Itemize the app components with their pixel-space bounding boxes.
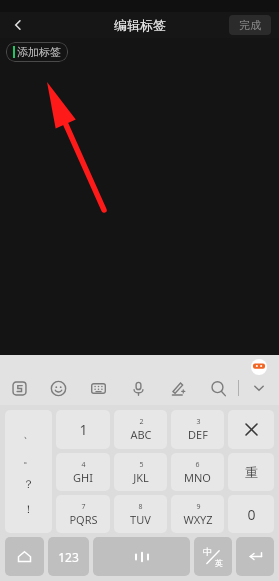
button[interactable]: 4 bbox=[56, 453, 110, 491]
button[interactable]: 、 bbox=[5, 410, 52, 533]
button[interactable]: Search bbox=[198, 371, 238, 405]
staticText: 6 bbox=[195, 460, 200, 470]
staticText: ！ bbox=[23, 502, 34, 516]
staticText: 添加标签 bbox=[17, 45, 61, 59]
button[interactable]: 重 bbox=[228, 453, 274, 491]
button[interactable]: Voice bbox=[118, 371, 158, 405]
button[interactable]: Enter bbox=[236, 537, 274, 576]
button[interactable]: 3 bbox=[171, 410, 224, 449]
staticText: GHI bbox=[73, 470, 93, 485]
staticText: DEF bbox=[188, 427, 208, 442]
button[interactable]: Space bbox=[93, 537, 190, 576]
button[interactable]: Delete bbox=[228, 410, 274, 449]
button[interactable]: Language bbox=[194, 537, 232, 576]
button[interactable]: 2 bbox=[114, 410, 167, 449]
staticText: WXYZ bbox=[183, 512, 213, 527]
staticText: MNO bbox=[184, 470, 211, 485]
staticText: 中 bbox=[203, 546, 212, 557]
button[interactable]: 完成 bbox=[229, 15, 271, 35]
button[interactable]: Sogou bbox=[0, 371, 39, 405]
staticText: 英 bbox=[215, 558, 223, 568]
staticText: 0 bbox=[247, 505, 256, 524]
staticText: 编辑标签 bbox=[114, 17, 166, 33]
staticText: 8 bbox=[138, 502, 143, 512]
button[interactable]: 添加标签 bbox=[6, 42, 68, 62]
button[interactable]: Emoji bbox=[39, 371, 78, 405]
button[interactable]: Keyboard bbox=[78, 371, 118, 405]
staticText: JKL bbox=[133, 470, 149, 485]
button[interactable]: 0 bbox=[228, 495, 274, 533]
button[interactable]: Home bbox=[5, 537, 44, 576]
staticText: 4 bbox=[81, 460, 86, 470]
staticText: 1 bbox=[79, 420, 88, 439]
staticText: 完成 bbox=[239, 18, 261, 32]
button[interactable]: Handwrite bbox=[158, 371, 198, 405]
staticText: PQRS bbox=[69, 512, 98, 527]
button[interactable]: 6 bbox=[171, 453, 224, 491]
button[interactable]: Collapse bbox=[239, 371, 279, 405]
staticText: TUV bbox=[130, 512, 151, 527]
button[interactable]: 5 bbox=[114, 453, 167, 491]
button[interactable]: 7 bbox=[56, 495, 110, 533]
staticText: 9 bbox=[196, 502, 201, 512]
staticText: 重 bbox=[245, 464, 258, 480]
staticText: ABC bbox=[130, 427, 152, 442]
staticText: 7 bbox=[81, 502, 86, 512]
button[interactable]: Back bbox=[0, 12, 36, 38]
staticText: 5 bbox=[139, 460, 144, 470]
staticText: 、 bbox=[23, 427, 34, 441]
staticText: 。 bbox=[23, 452, 34, 466]
button[interactable]: 1 bbox=[56, 410, 110, 449]
button[interactable]: Avatar bbox=[251, 359, 267, 375]
staticText: ？ bbox=[23, 477, 34, 491]
staticText: 3 bbox=[196, 417, 201, 427]
button[interactable]: 8 bbox=[114, 495, 167, 533]
button[interactable]: 123 bbox=[48, 537, 89, 576]
button[interactable]: 9 bbox=[171, 495, 224, 533]
staticText: 2 bbox=[139, 417, 144, 427]
staticText: 123 bbox=[58, 549, 79, 565]
